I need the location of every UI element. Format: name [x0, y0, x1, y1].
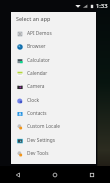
staticText: API Demos [27, 30, 52, 37]
button[interactable]: Home [36, 166, 73, 183]
staticText: Calculator [27, 57, 50, 64]
button[interactable]: Recents [73, 166, 110, 183]
staticText: Select an app [16, 15, 51, 22]
staticText: Calendar [27, 70, 48, 77]
staticText: Camera [27, 83, 45, 90]
button[interactable]: Custom Locale [11, 120, 96, 133]
staticText: Dev Settings [27, 137, 56, 144]
staticText: Browser [27, 43, 46, 50]
staticText: Custom Locale [27, 123, 61, 130]
button[interactable]: Dev Settings [11, 134, 96, 147]
button[interactable]: Contacts [11, 107, 96, 120]
staticText: Dev Tools [27, 150, 49, 157]
button[interactable]: Browser [11, 40, 96, 53]
button[interactable]: Calendar [11, 67, 96, 80]
button[interactable]: Camera [11, 80, 96, 93]
button[interactable]: Back [0, 166, 36, 183]
button[interactable]: Dev Tools [11, 147, 96, 160]
button[interactable]: Clock [11, 94, 96, 107]
button[interactable]: API Demos [11, 27, 96, 40]
button[interactable]: Calculator [11, 54, 96, 67]
staticText: Contacts [27, 110, 47, 117]
staticText: Clock [27, 97, 40, 104]
staticText: 1:33 [96, 2, 108, 10]
